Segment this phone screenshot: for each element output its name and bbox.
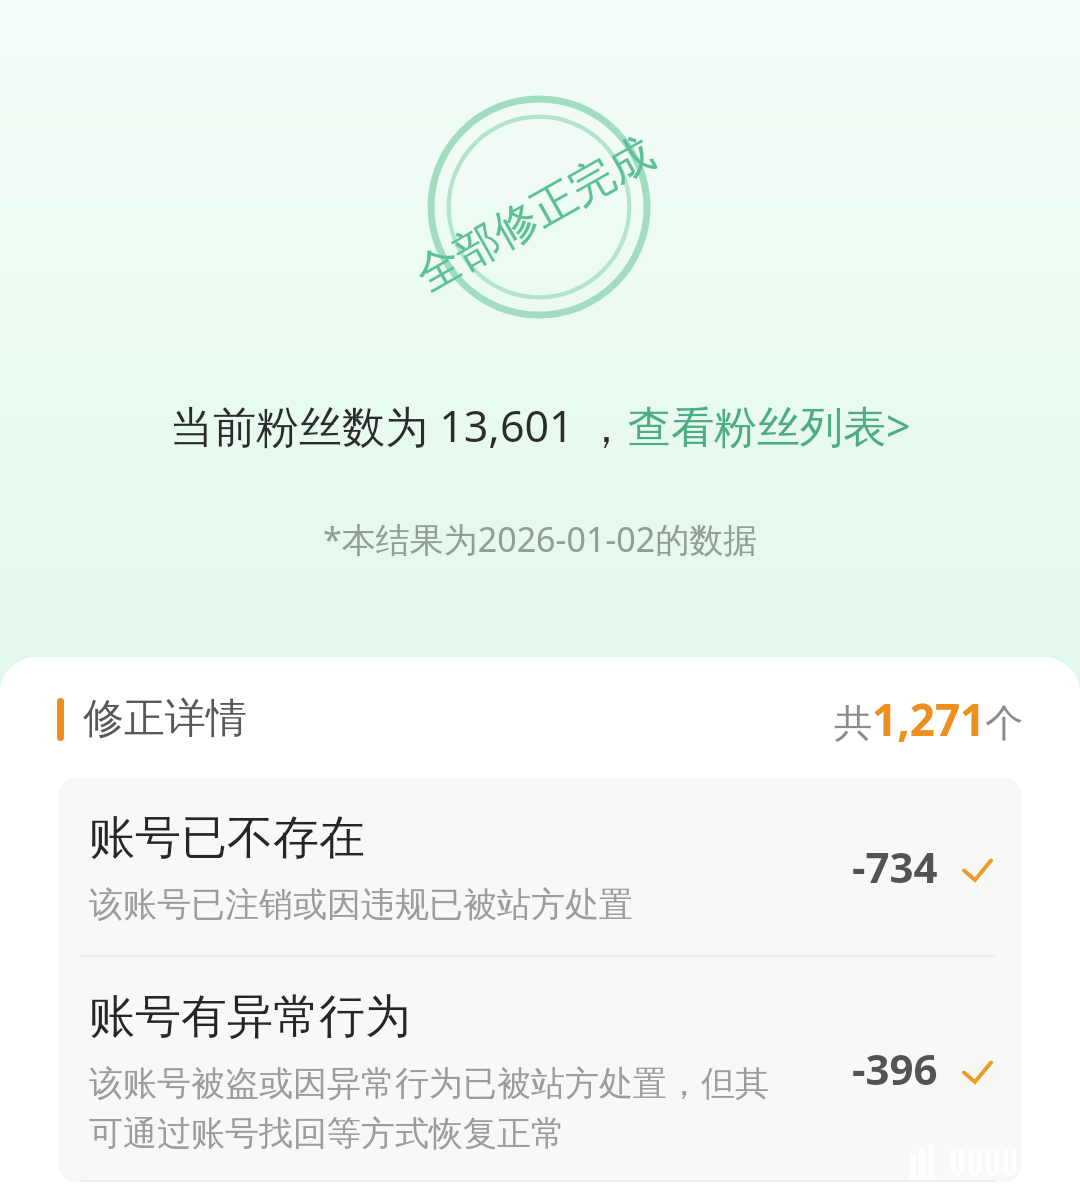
staticText: 全部修正完成 <box>407 126 663 303</box>
other: Completed <box>960 1052 994 1086</box>
staticText: 共1,271个 <box>834 689 1024 749</box>
staticText: *本结果为2026-01-02的数据 <box>323 516 758 562</box>
button[interactable]: 账号已不存在 <box>58 778 1022 955</box>
staticText: 账号已不存在 <box>89 809 365 867</box>
staticText: 查看粉丝列表> <box>628 396 911 455</box>
staticText: 该账号已注销或因违规已被站方处置 <box>89 883 633 926</box>
button[interactable]: 账号有异常行为 <box>58 957 1022 1180</box>
staticText: 该账号被盗或因异常行为已被站方处置，但其 <box>89 1062 769 1105</box>
staticText: 账号有异常行为 <box>89 988 411 1046</box>
staticText: 当前粉丝数为 13,601 ， <box>170 396 628 455</box>
staticText: -734 <box>852 838 938 895</box>
staticText: -396 <box>852 1040 938 1097</box>
other: Completed <box>960 850 994 884</box>
button[interactable]: 查看粉丝列表> <box>628 396 911 455</box>
staticText: 可通过账号找回等方式恢复正常 <box>89 1112 565 1155</box>
staticText: 修正详情 <box>83 693 247 745</box>
